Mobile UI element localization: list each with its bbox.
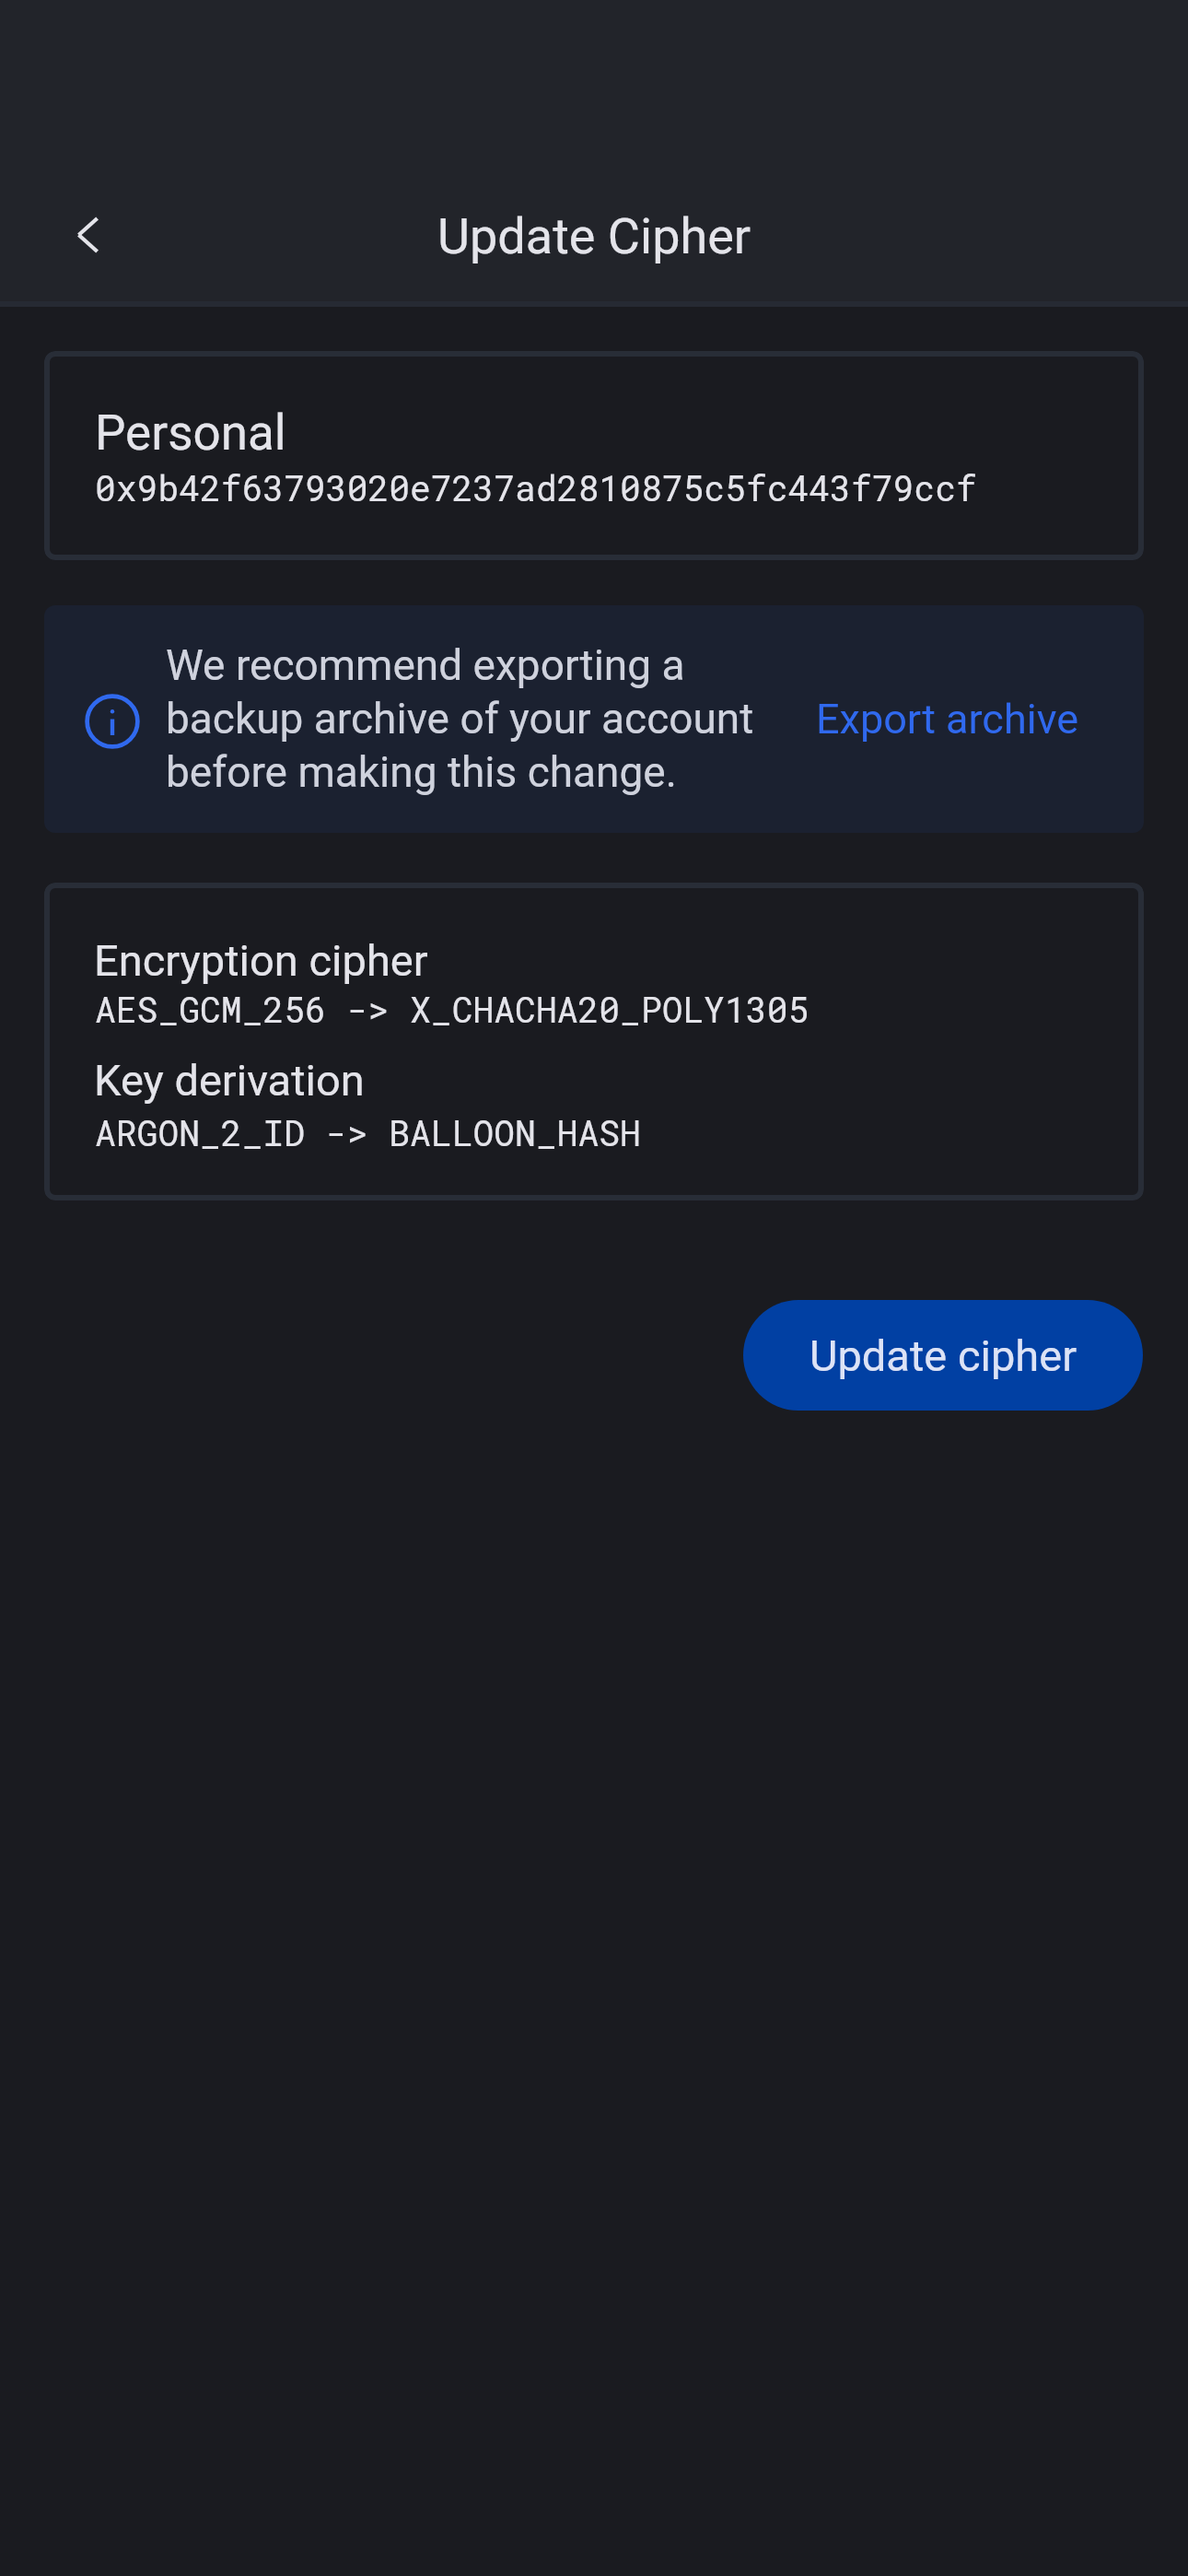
staticText: AES_GCM_256 -> X_CHACHA20_POLY1305 [95,986,809,1032]
staticText: ARGON_2_ID -> BALLOON_HASH [95,1109,641,1155]
button[interactable]: Update cipher [743,1300,1143,1411]
staticText: Export archive [816,695,1079,744]
button[interactable]: Back [38,183,141,287]
staticText: We recommend exporting a backup archive … [166,640,754,797]
staticText: Update cipher [809,1330,1077,1381]
staticText: Encryption cipher [94,935,428,986]
staticText: Update Cipher [437,207,751,265]
staticText: 0x9b42f63793020e7237ad2810875c5fc443f79c… [95,464,977,510]
staticText: Key derivation [94,1055,365,1106]
button[interactable]: Export archive [799,673,1138,765]
staticText: Personal [95,404,286,462]
button[interactable]: Encryption cipher [44,883,1144,1200]
button[interactable]: Personal [44,351,1144,560]
